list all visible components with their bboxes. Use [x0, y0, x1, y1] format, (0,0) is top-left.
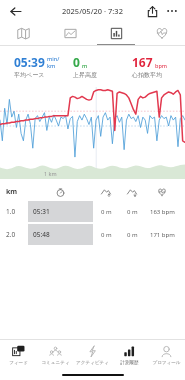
- button[interactable]: Map: [0, 22, 47, 44]
- staticText: 0: [73, 54, 80, 70]
- staticText: 05:48: [33, 230, 50, 239]
- staticText: 平均ペース: [14, 71, 45, 79]
- staticText: 05:39: [14, 54, 45, 70]
- button[interactable]: 1.0: [0, 201, 185, 222]
- staticText: 167: [132, 54, 153, 70]
- staticText: 2025/05/20 · 7:32: [62, 6, 123, 16]
- button[interactable]: More options: [162, 1, 182, 21]
- button[interactable]: 167: [122, 52, 181, 81]
- button[interactable]: 計測履歴: [111, 340, 148, 370]
- staticText: フィード: [9, 360, 28, 366]
- button[interactable]: 2.0: [0, 224, 185, 245]
- button[interactable]: Back: [4, 0, 26, 22]
- button[interactable]: Splits: [93, 22, 139, 44]
- button[interactable]: フィード: [0, 340, 37, 370]
- button[interactable]: Heart rate: [139, 22, 185, 44]
- staticText: min/km: [47, 55, 63, 69]
- staticText: アクティビティ: [76, 360, 109, 366]
- staticText: m: [82, 62, 88, 69]
- staticText: 05:31: [33, 207, 50, 216]
- staticText: 0 m: [127, 231, 138, 239]
- staticText: 心拍数平均: [132, 71, 162, 79]
- button[interactable]: コミュニティ: [37, 340, 74, 370]
- staticText: 163 bpm: [150, 208, 175, 216]
- staticText: km: [6, 187, 18, 197]
- staticText: 171 bpm: [150, 231, 175, 239]
- button[interactable]: Share: [142, 1, 162, 21]
- staticText: 1 km: [44, 170, 57, 177]
- staticText: 0 m: [101, 208, 112, 216]
- staticText: 上昇高度: [73, 71, 97, 79]
- staticText: プロフィール: [152, 360, 181, 366]
- staticText: 2.0: [6, 230, 16, 239]
- staticText: 1.0: [6, 207, 16, 216]
- staticText: 0 m: [101, 231, 112, 239]
- button[interactable]: プロフィール: [148, 340, 185, 370]
- staticText: 0 m: [127, 208, 138, 216]
- button[interactable]: アクティビティ: [74, 340, 111, 370]
- staticText: 計測履歴: [120, 360, 139, 366]
- staticText: bpm: [155, 62, 168, 69]
- button[interactable]: 0: [63, 52, 122, 81]
- button[interactable]: Graph: [47, 22, 93, 44]
- button[interactable]: 05:39: [4, 52, 63, 81]
- staticText: コミュニティ: [41, 360, 70, 366]
